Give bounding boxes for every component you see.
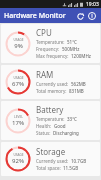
staticText: 831MB <box>69 88 84 94</box>
staticText: 1200MHz <box>71 53 91 59</box>
button[interactable]: USAGE <box>1 65 100 99</box>
button[interactable]: Info <box>86 10 98 22</box>
staticText: Currently used: <box>36 81 69 87</box>
staticText: 33°C <box>67 116 77 122</box>
button[interactable]: USAGE <box>1 24 100 63</box>
staticText: LEVEL <box>14 115 23 119</box>
staticText: Good <box>54 123 66 129</box>
staticText: Total memory: <box>36 88 67 94</box>
staticText: Battery <box>36 104 64 115</box>
button[interactable]: LEVEL <box>1 101 100 140</box>
staticText: 11.5GB <box>63 165 79 171</box>
staticText: 10.7GB <box>71 158 87 164</box>
staticText: Storage <box>36 146 66 157</box>
staticText: 92% <box>12 157 24 165</box>
staticText: Max frequency: <box>36 53 69 59</box>
staticText: USAGE <box>13 76 24 80</box>
staticText: USAGE <box>13 38 24 42</box>
staticText: 17% <box>12 119 24 127</box>
staticText: 67% <box>12 80 24 88</box>
staticText: Status: <box>36 130 51 136</box>
staticText: CPU <box>36 27 52 38</box>
staticText: 9% <box>14 42 23 50</box>
staticText: Discharging <box>53 130 79 136</box>
staticText: Temperature: <box>36 39 65 45</box>
staticText: 51°C <box>67 39 77 45</box>
staticText: Total space: <box>36 165 61 171</box>
button[interactable]: Refresh <box>74 10 86 22</box>
staticText: RAM <box>36 69 54 80</box>
staticText: Health: <box>36 123 52 129</box>
staticText: 562MB <box>71 81 86 87</box>
staticText: 19:03 <box>86 1 99 8</box>
staticText: Temperature: <box>36 116 65 122</box>
staticText: USAGE <box>13 153 24 157</box>
button[interactable]: USAGE <box>1 142 100 176</box>
staticText: 500MHz <box>62 46 80 52</box>
staticText: Hardware Monitor <box>4 11 66 21</box>
staticText: Currently used: <box>36 158 69 164</box>
staticText: Frequency: <box>36 46 60 52</box>
